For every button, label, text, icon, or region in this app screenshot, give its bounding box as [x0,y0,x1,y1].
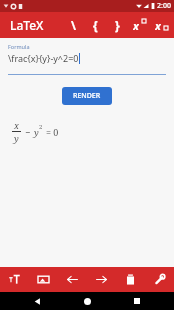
staticText: } [115,17,120,33]
button[interactable]: RENDER [62,87,112,105]
button[interactable]: Undo [58,267,87,292]
button[interactable]: Redo [87,267,116,292]
button[interactable]: Delete [116,267,145,292]
staticText: LaTeX [10,17,44,33]
staticText: x [14,119,19,131]
staticText: Formula [8,43,30,50]
button[interactable]: Insert right brace [106,12,128,38]
staticText: RENDER [73,91,101,101]
button[interactable]: Home [74,292,100,310]
button[interactable]: Back [24,292,50,310]
staticText: x [133,18,139,32]
staticText: 2 [39,123,43,131]
button[interactable]: Recent apps [124,292,150,310]
button[interactable]: Subscript [150,12,172,38]
staticText: 2:00 [157,1,171,11]
staticText: x [155,18,161,32]
staticText: y [34,126,39,138]
staticText: − [25,126,31,138]
button[interactable]: Settings [145,267,174,292]
staticText: = 0 [46,126,59,138]
staticText: \frac{x}{y}-y^2=0 [8,52,79,64]
button[interactable]: Text format [0,267,29,292]
button[interactable]: Insert image [29,267,58,292]
button[interactable]: Insert left brace [84,12,106,38]
staticText: \ [71,17,76,33]
staticText: { [93,17,98,33]
button[interactable]: Insert backslash [62,12,84,38]
staticText: y [14,132,19,144]
button[interactable]: Superscript [128,12,150,38]
